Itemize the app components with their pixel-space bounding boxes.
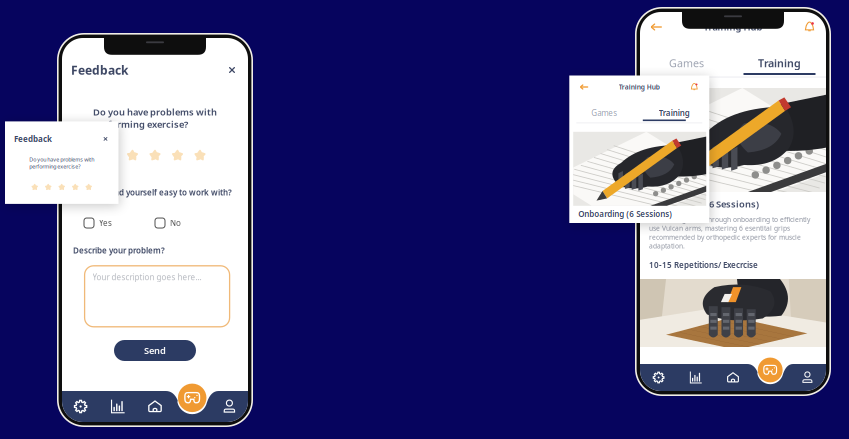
staticText: Games <box>591 108 617 118</box>
button[interactable]: Games <box>758 357 783 382</box>
staticText: Did you find yourself easy to work with? <box>78 187 232 198</box>
staticText: Send <box>144 344 166 357</box>
button[interactable]: Home <box>136 391 174 422</box>
button[interactable]: Profile <box>789 364 826 391</box>
staticText: Training <box>659 108 690 118</box>
staticText: Do you have problems with performing exe… <box>29 156 94 170</box>
staticText: Do you have problems with performing exe… <box>93 106 217 130</box>
staticText: Training Hub <box>703 21 762 33</box>
button[interactable]: Yes <box>84 216 155 230</box>
button[interactable]: Statistics <box>677 364 714 391</box>
button[interactable]: Statistics <box>99 391 136 422</box>
button[interactable]: Send <box>114 340 196 361</box>
button[interactable]: Close <box>101 135 109 143</box>
button[interactable]: Games <box>178 384 206 412</box>
staticText: Feedback <box>14 134 52 144</box>
staticText: No <box>170 218 181 228</box>
staticText: Feedback <box>71 62 128 78</box>
staticText: Users are guided through onboarding to e… <box>649 215 810 250</box>
staticText: Onboarding (6 Sessions) <box>578 209 672 219</box>
button[interactable]: Notifications <box>802 19 817 34</box>
staticText: Describe your problem? <box>73 245 165 256</box>
staticText: 10-15 Repetitions/ Execrcise <box>649 260 758 270</box>
staticText: Onboarding (6 Sessions) <box>649 198 759 210</box>
staticText: Training Hub <box>619 83 660 91</box>
button[interactable]: Settings <box>640 364 677 391</box>
button[interactable]: No <box>155 216 226 230</box>
button[interactable]: Games <box>640 54 733 72</box>
button[interactable]: Settings <box>62 391 99 422</box>
button[interactable]: Back <box>649 19 664 34</box>
button[interactable]: Training <box>733 54 826 72</box>
staticText: Your description goes here... <box>93 272 202 282</box>
staticText: Yes <box>99 218 112 228</box>
button[interactable]: Profile <box>211 391 248 422</box>
button[interactable]: Close <box>225 63 239 77</box>
button[interactable]: Home <box>714 364 752 391</box>
staticText: Games <box>669 56 704 70</box>
staticText: Training <box>758 56 801 70</box>
